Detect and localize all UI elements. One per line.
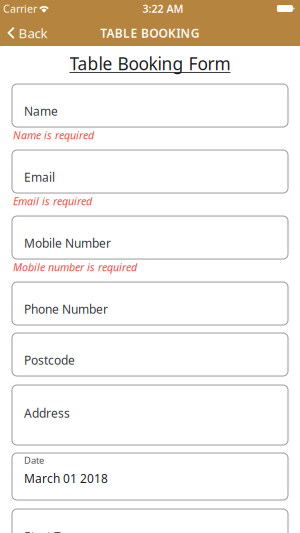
button[interactable]: Name	[12, 84, 288, 127]
staticText: 3:22 AM	[142, 1, 183, 16]
staticText: Name	[24, 103, 58, 119]
staticText: March 01 2018	[24, 470, 108, 486]
staticText: Date	[24, 454, 44, 466]
staticText: Postcode	[24, 352, 75, 368]
staticText: TABLE BOOKING	[100, 25, 200, 41]
button[interactable]: Phone Number	[12, 282, 288, 325]
staticText: Carrier	[3, 1, 37, 16]
staticText: Email	[24, 169, 55, 185]
staticText: Back	[19, 24, 48, 42]
staticText: Mobile number is required	[13, 260, 137, 274]
button[interactable]: Back	[0, 20, 56, 46]
staticText: Start Time	[24, 528, 82, 533]
button[interactable]: Date	[12, 453, 288, 500]
staticText: Phone Number	[24, 301, 108, 317]
button[interactable]: Start Time	[12, 509, 288, 533]
staticText: Email is required	[13, 194, 92, 208]
button[interactable]: Mobile Number	[12, 216, 288, 259]
button[interactable]: Address	[12, 385, 288, 445]
button[interactable]: Email	[12, 150, 288, 193]
staticText: Mobile Number	[24, 235, 111, 251]
button[interactable]: Postcode	[12, 333, 288, 376]
staticText: Address	[24, 405, 70, 421]
staticText: Table Booking Form	[69, 52, 230, 75]
staticText: Name is required	[13, 128, 94, 142]
